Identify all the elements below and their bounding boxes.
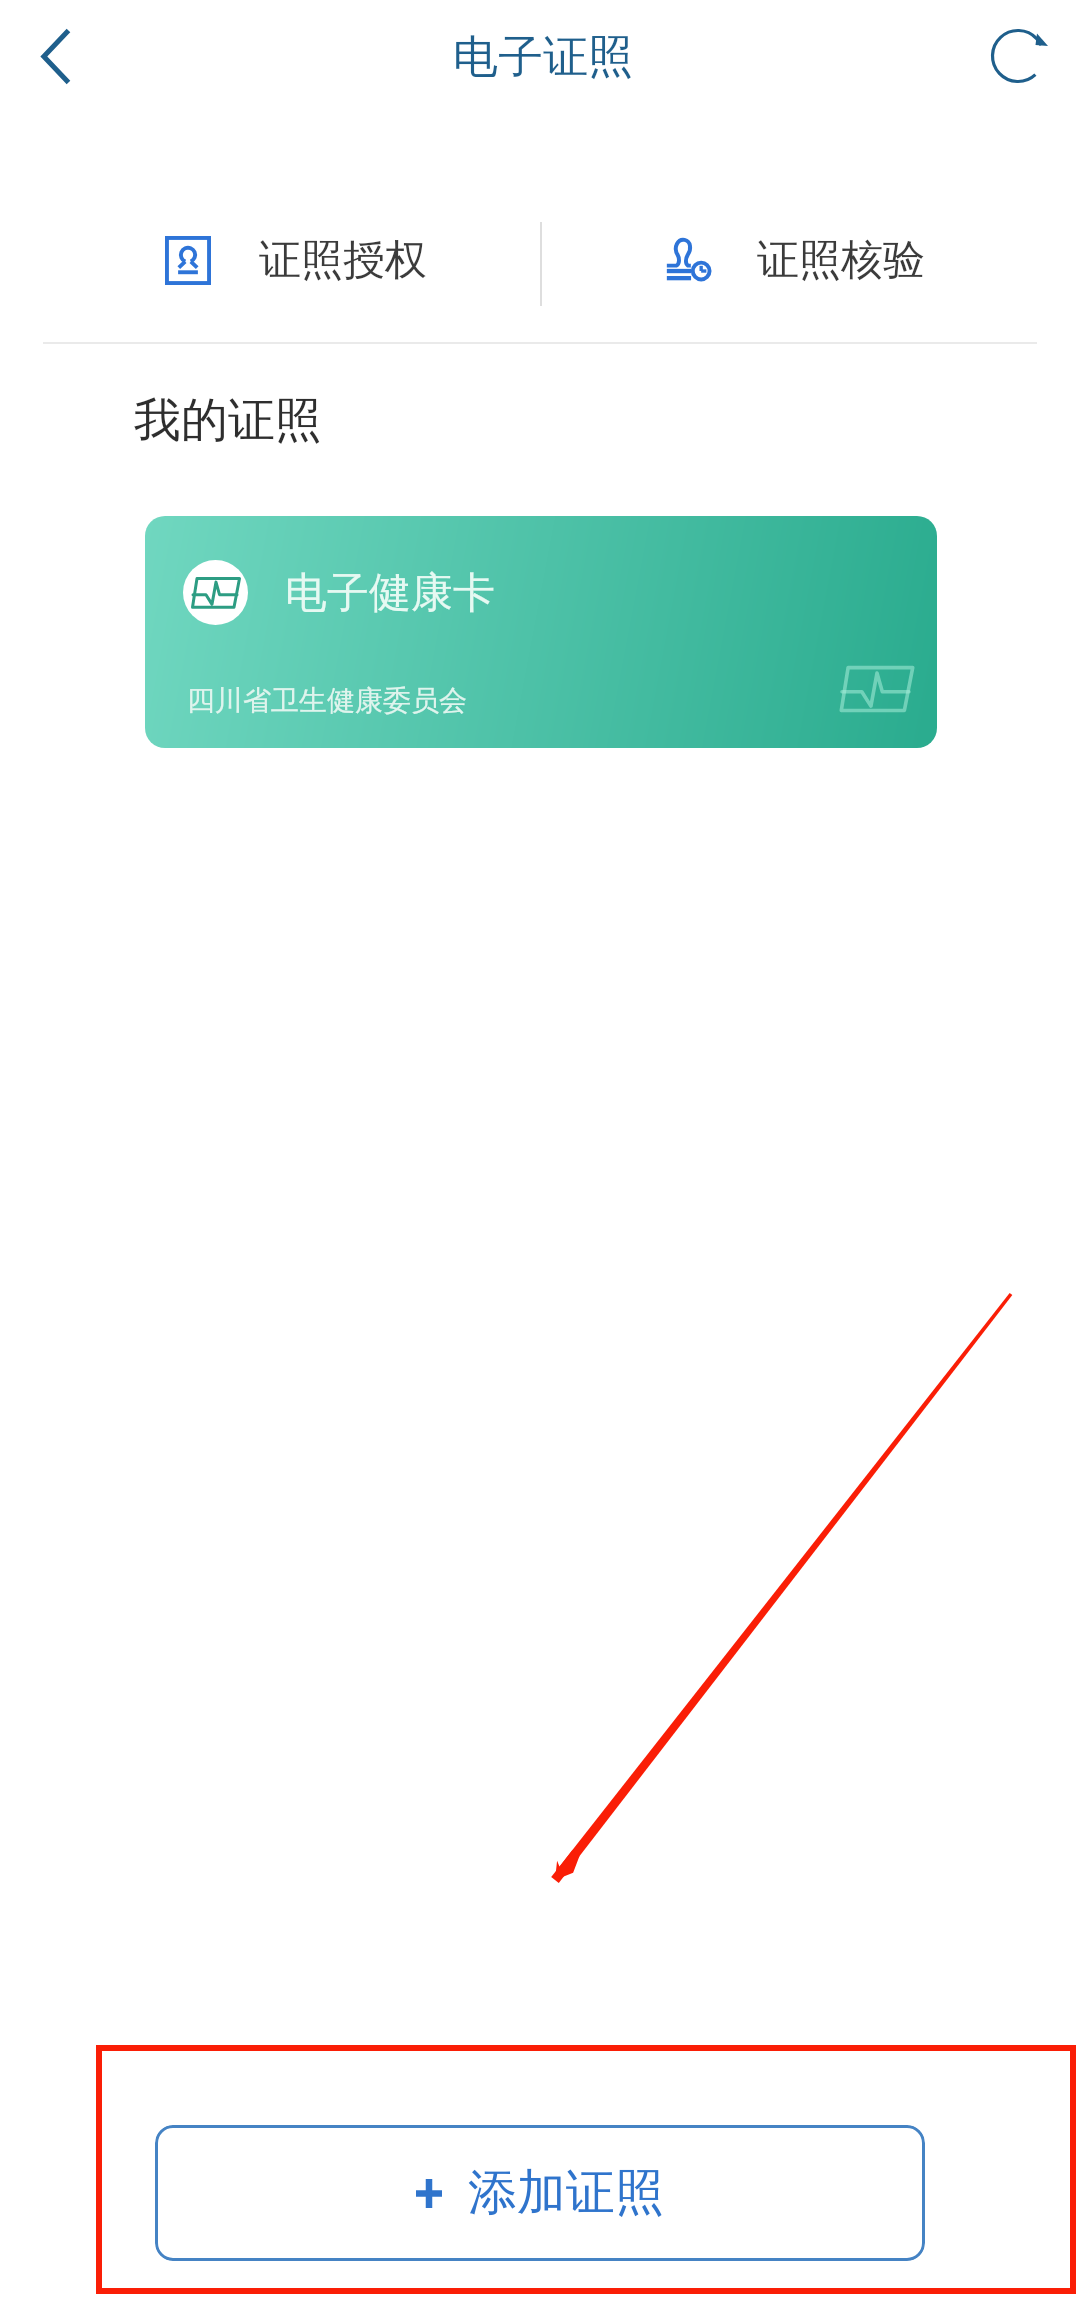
staticText: 电子证照 bbox=[3, 29, 1080, 86]
staticText: 四川省卫生健康委员会 bbox=[187, 683, 467, 718]
button[interactable]: 证照核验 bbox=[540, 196, 1080, 324]
button[interactable]: Refresh bbox=[974, 12, 1062, 100]
staticText: 我的证照 bbox=[134, 391, 322, 450]
staticText: 证照核验 bbox=[757, 234, 925, 287]
staticText: 电子健康卡 bbox=[285, 567, 495, 620]
button[interactable]: 证照授权 bbox=[0, 196, 540, 324]
staticText: 添加证照 bbox=[468, 2162, 664, 2224]
staticText: 证照授权 bbox=[259, 234, 427, 287]
button[interactable]: Back bbox=[11, 12, 99, 100]
button[interactable]: 电子健康卡 bbox=[145, 516, 937, 748]
button[interactable]: 添加证照 bbox=[155, 2125, 925, 2261]
